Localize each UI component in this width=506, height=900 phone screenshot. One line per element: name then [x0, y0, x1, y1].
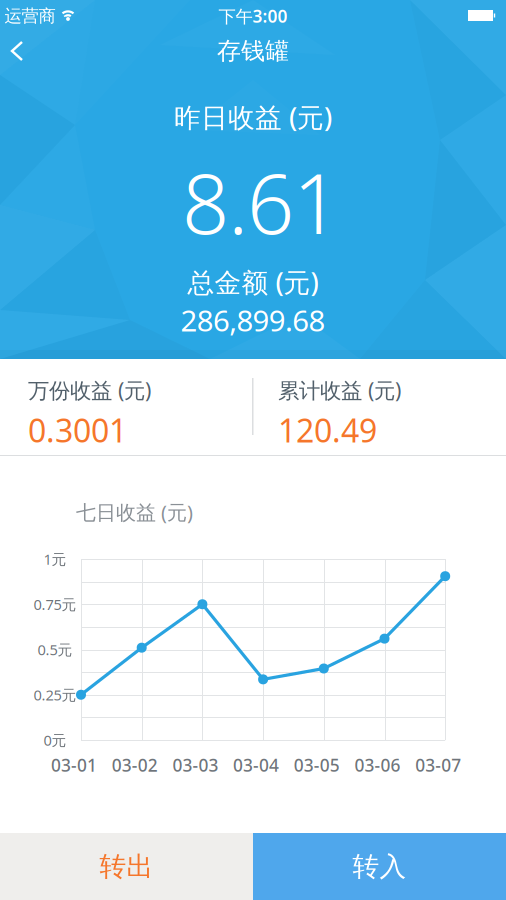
staticText: 1元 [43, 549, 66, 569]
staticText: 存钱罐 [217, 36, 289, 66]
staticText: 03-03 [172, 753, 218, 776]
staticText: 0.3001 [28, 409, 127, 451]
staticText: 万份收益 (元) [28, 376, 151, 404]
staticText: 03-04 [233, 753, 279, 776]
staticText: 累计收益 (元) [278, 376, 401, 404]
staticText: 03-02 [112, 753, 158, 776]
staticText: 转出 [99, 850, 153, 883]
staticText: 8.61 [182, 147, 340, 257]
button[interactable]: 转入 [253, 833, 506, 900]
button[interactable]: Back [9, 37, 39, 65]
staticText: 03-05 [294, 753, 340, 776]
staticText: 03-06 [354, 753, 400, 776]
staticText: 0.5元 [37, 640, 72, 659]
staticText: 昨日收益 (元) [174, 99, 332, 135]
staticText: 下午3:00 [218, 4, 287, 27]
staticText: 0元 [43, 730, 66, 750]
staticText: 03-01 [51, 753, 97, 776]
staticText: 0.75元 [33, 594, 76, 614]
staticText: 286,899.68 [181, 300, 325, 339]
staticText: 0.25元 [33, 685, 76, 704]
staticText: 七日收益 (元) [76, 499, 193, 525]
staticText: 转入 [352, 850, 406, 883]
staticText: 运营商 [4, 5, 55, 27]
staticText: 03-07 [415, 753, 461, 776]
button[interactable]: 转出 [0, 833, 253, 900]
staticText: 总金额 (元) [187, 264, 318, 300]
staticText: 120.49 [278, 409, 377, 451]
